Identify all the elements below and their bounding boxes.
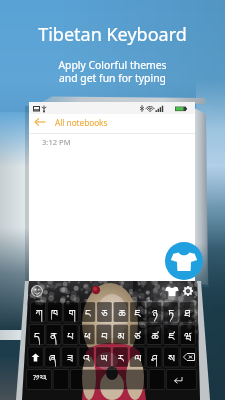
button[interactable]: Settings xyxy=(182,285,194,297)
button[interactable]: Back xyxy=(29,114,195,130)
button[interactable]: ཁ xyxy=(46,302,63,322)
staticText: 3:12 PM xyxy=(42,137,71,147)
button[interactable]: ས xyxy=(163,347,180,367)
button[interactable]: ཝ xyxy=(179,325,196,345)
button[interactable]: ཏ xyxy=(162,302,179,322)
staticText: ཞ xyxy=(49,347,56,367)
button[interactable]: ཚ xyxy=(146,325,163,345)
staticText: ཚ xyxy=(151,325,159,345)
button[interactable]: ཛ xyxy=(163,325,180,345)
staticText: ཏ xyxy=(168,302,174,322)
staticText: ག xyxy=(68,302,76,322)
staticText: ཤ xyxy=(151,347,158,367)
staticText: པ xyxy=(67,325,74,345)
button[interactable]: Enter xyxy=(162,370,194,390)
staticText: ཛ xyxy=(168,325,175,345)
button[interactable]: ཙ xyxy=(129,325,146,345)
staticText: ས xyxy=(168,347,175,367)
other: Back xyxy=(34,117,46,127)
staticText: Tibetan Keyboard xyxy=(38,22,187,47)
staticText: ང xyxy=(85,302,91,322)
staticText: ཟ xyxy=(67,347,73,367)
staticText: ད xyxy=(34,325,40,345)
staticText: All notebooks xyxy=(55,117,108,128)
button[interactable]: Backspace xyxy=(180,347,197,367)
button[interactable]: Change theme xyxy=(165,242,203,280)
staticText: མ xyxy=(117,325,125,345)
button[interactable]: ལ xyxy=(129,347,146,367)
button[interactable]: ?༡༢༣ xyxy=(26,370,53,390)
staticText: ཙ xyxy=(134,325,141,345)
staticText: ཁ xyxy=(51,302,58,322)
button[interactable]: ན xyxy=(45,325,62,345)
staticText: ?༡༢༣ xyxy=(33,370,47,390)
button[interactable]: ཀ xyxy=(30,302,47,322)
button[interactable]: ཐ xyxy=(179,302,196,322)
button[interactable]: ང xyxy=(79,302,96,322)
staticText: ཆ xyxy=(118,302,126,322)
button[interactable]: བ xyxy=(96,325,113,345)
staticText: ཐ xyxy=(184,302,191,322)
staticText: ཉ xyxy=(152,302,158,322)
staticText: Apply Colorful themes and get fun for ty… xyxy=(58,58,167,85)
button[interactable]: པ xyxy=(62,325,79,345)
button[interactable]: Themes xyxy=(166,285,178,297)
button[interactable]: ཉ xyxy=(146,302,163,322)
button[interactable]: ཅ xyxy=(96,302,113,322)
staticText: ཇ xyxy=(134,302,141,322)
button[interactable]: ཆ xyxy=(113,302,130,322)
button[interactable]: ག xyxy=(63,302,80,322)
staticText: ར xyxy=(117,347,124,367)
button[interactable]: ཕ xyxy=(79,325,96,345)
button[interactable]: ཡ xyxy=(95,347,112,367)
button[interactable]: ཇ xyxy=(129,302,146,322)
button[interactable]: ར xyxy=(112,347,129,367)
staticText: ན xyxy=(50,325,57,345)
button[interactable]: ཞ xyxy=(44,347,61,367)
staticText: ཀ xyxy=(35,302,43,322)
button[interactable]: ཟ xyxy=(61,347,78,367)
button[interactable]: མ xyxy=(112,325,129,345)
staticText: ལ xyxy=(134,347,142,367)
staticText: ཕ xyxy=(84,325,91,345)
staticText: ཅ xyxy=(101,302,108,322)
staticText: བ xyxy=(101,325,108,345)
button[interactable]: Emoji xyxy=(31,285,43,297)
button[interactable]: Shift xyxy=(27,347,44,367)
staticText: འ xyxy=(83,347,90,367)
button[interactable]: འ xyxy=(78,347,95,367)
button[interactable]: ཤ xyxy=(146,347,163,367)
button[interactable]: ད xyxy=(28,325,45,345)
staticText: ཝ xyxy=(184,325,192,345)
staticText: ཡ xyxy=(100,347,108,367)
